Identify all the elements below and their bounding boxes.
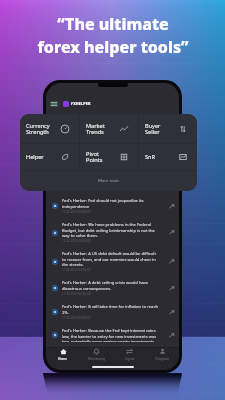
staticText: Helper — [26, 153, 60, 161]
staticText: Market Trends — [86, 122, 119, 136]
staticText: Signal — [125, 357, 135, 361]
staticText: forex helper tools” — [37, 36, 189, 58]
staticText: 11-02-2023 04:50:00 — [62, 292, 91, 296]
staticText: “The ultimate — [57, 13, 169, 35]
staticText: 11-02-2023 04:50:00 — [62, 268, 91, 272]
button[interactable]: More tools — [20, 171, 197, 191]
staticText: 11-02-2023 04:50:00 — [62, 316, 91, 320]
button[interactable]: Fed's Harker: A US debt default would be… — [46, 247, 179, 276]
button[interactable]: Share — [169, 333, 174, 338]
button[interactable]: Fed's Harker: Because the Fed kept inter… — [46, 324, 179, 345]
staticText: Telegram — [155, 357, 170, 361]
button[interactable]: Menu — [50, 100, 58, 108]
button[interactable]: Share — [169, 230, 174, 235]
staticText: Currency Strength — [26, 122, 60, 136]
button[interactable]: Home — [46, 346, 80, 363]
button[interactable]: Fed's Harker: A debt ceiling crisis woul… — [46, 276, 179, 300]
staticText: Pivot Points — [86, 150, 119, 164]
staticText: More tools — [98, 178, 120, 184]
button[interactable]: Share — [169, 286, 174, 291]
button[interactable]: Signal — [113, 346, 146, 363]
button[interactable]: Helper — [20, 144, 79, 170]
button[interactable]: Monitoring — [80, 346, 113, 363]
staticText: Fed's Harker: A US debt default would be… — [62, 251, 158, 267]
staticText: Buyer Seller — [145, 122, 178, 136]
staticText: Fed's Harker: It will take time for infl… — [62, 304, 158, 315]
staticText: FXHELPER — [71, 101, 91, 106]
button[interactable]: Buyer Seller — [139, 114, 197, 143]
staticText: 11-02-2023 04:50:00 — [62, 210, 91, 214]
staticText: Fed's Harker: We have problems in the Fe… — [62, 222, 158, 238]
button[interactable]: Fed's Harker: We have problems in the Fe… — [46, 218, 179, 247]
button[interactable]: Share — [169, 259, 174, 264]
button[interactable]: Pivot Points — [80, 144, 138, 170]
staticText: 11-02-2023 04:50:00 — [62, 239, 91, 243]
button[interactable]: Fed's Harker: It will take time for infl… — [46, 300, 179, 324]
staticText: SnR — [145, 153, 178, 161]
staticText: Home — [58, 357, 68, 361]
button[interactable]: SnR — [139, 144, 197, 170]
button[interactable]: Currency Strength — [20, 114, 79, 143]
button[interactable]: Share — [169, 310, 174, 315]
button[interactable]: Market Trends — [80, 114, 138, 143]
button[interactable]: Fed's Harker: Fed should not jeopardize … — [46, 194, 179, 218]
staticText: Fed's Harker: Fed should not jeopardize … — [62, 198, 158, 209]
staticText: Fed's Harker: Because the Fed kept inter… — [62, 328, 158, 342]
staticText: Monitoring — [88, 357, 106, 361]
button[interactable]: Share — [169, 204, 174, 209]
button[interactable]: Telegram — [146, 346, 179, 363]
staticText: Fed's Harker: A debt ceiling crisis woul… — [62, 280, 158, 291]
